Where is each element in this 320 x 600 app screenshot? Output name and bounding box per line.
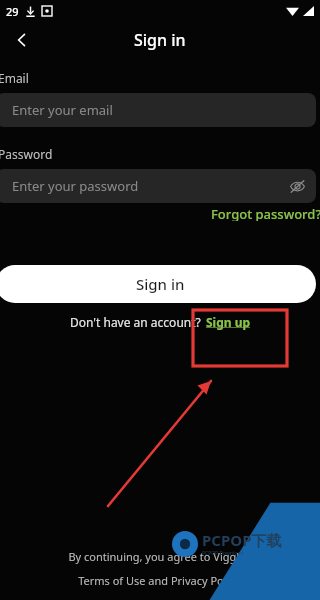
staticText: Don't have an account? (70, 314, 201, 330)
staticText: 29 (6, 4, 19, 19)
button[interactable]: Back (0, 18, 44, 62)
button[interactable]: Enter your password (0, 169, 316, 203)
staticText: Sign up (206, 314, 251, 330)
staticText: Enter your password (12, 177, 139, 195)
button[interactable]: Terms of Use and Privacy Policy. (78, 573, 243, 588)
button[interactable]: Show password (284, 173, 310, 199)
button[interactable]: Sign up (206, 314, 251, 330)
staticText: Sign in (136, 274, 185, 294)
button[interactable]: Enter your email (0, 93, 316, 127)
staticText: Sign in (134, 29, 186, 51)
staticText: By continuing, you agree to Viggle's (68, 549, 253, 564)
staticText: PCPOP下载 (202, 530, 282, 550)
staticText: Forgot password? (211, 205, 320, 221)
button[interactable]: Forgot password? (209, 203, 320, 223)
staticText: PCPOP Download (202, 550, 244, 557)
staticText: Enter your email (12, 101, 113, 119)
button[interactable]: Sign in (0, 265, 316, 303)
staticText: Email (0, 70, 29, 86)
staticText: Password (0, 146, 53, 162)
